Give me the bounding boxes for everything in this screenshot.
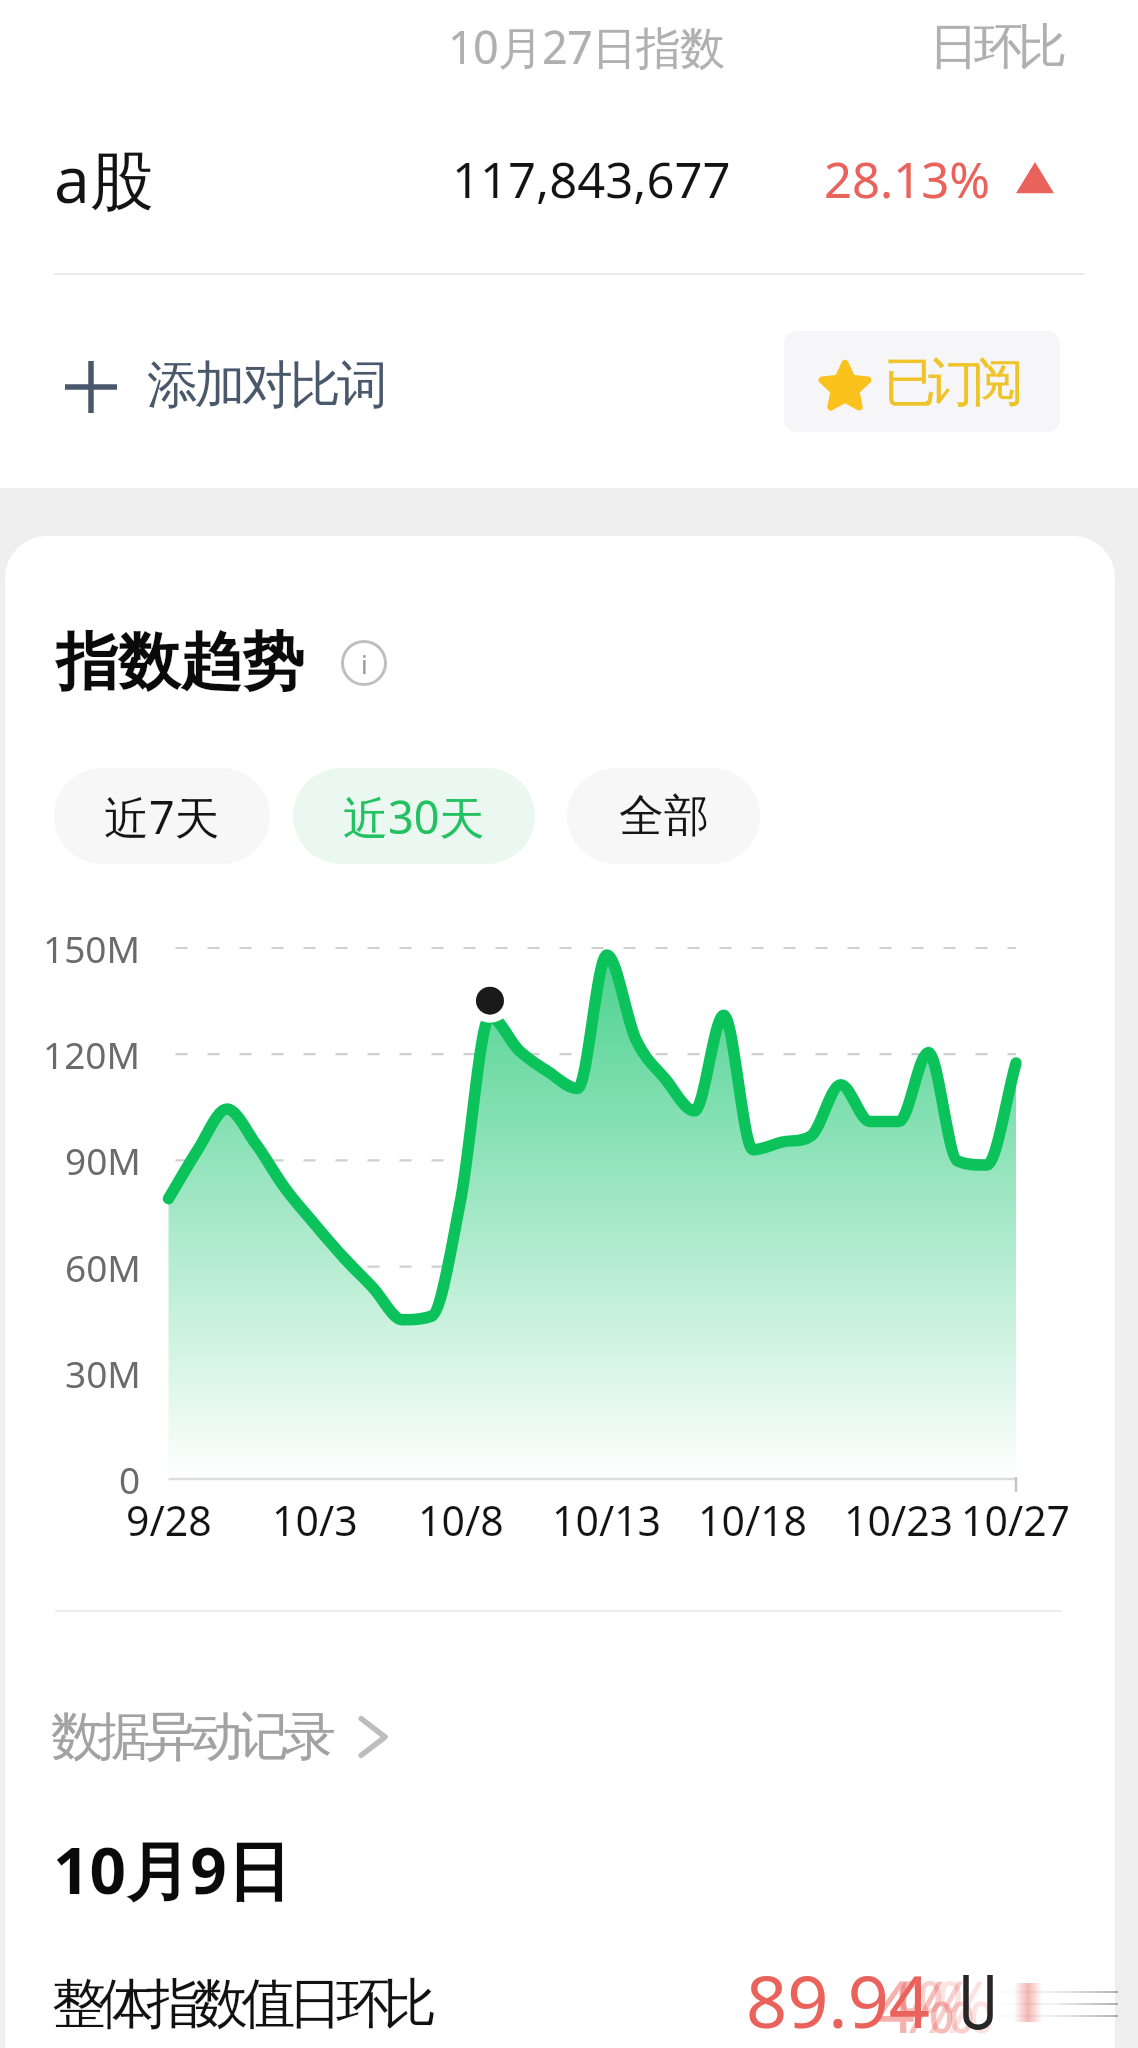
staticText: 90M bbox=[65, 1135, 141, 1185]
staticText: 150M bbox=[43, 923, 141, 973]
button[interactable]: Info bbox=[341, 640, 387, 686]
staticText: 添加对比词 bbox=[147, 353, 385, 417]
staticText: 整体指数值日环比 bbox=[52, 1970, 431, 2038]
staticText: 指数趋势 bbox=[56, 623, 304, 701]
staticText: % bbox=[916, 1956, 976, 2048]
staticText: 28.13% bbox=[824, 146, 990, 213]
staticText: 10/3 bbox=[272, 1492, 358, 1548]
staticText: 近7天 bbox=[104, 786, 220, 847]
staticText: 近30天 bbox=[343, 786, 485, 847]
staticText: 120M bbox=[43, 1029, 141, 1079]
button[interactable]: 数据异动记录 bbox=[54, 1704, 397, 1770]
button[interactable]: 已订阅 bbox=[784, 331, 1060, 432]
button[interactable]: 近7天 bbox=[54, 768, 270, 864]
staticText: 10/8 bbox=[418, 1492, 504, 1548]
staticText: 89.94 bbox=[746, 1951, 931, 2048]
staticText: 10/27 bbox=[961, 1492, 1071, 1548]
staticText: 已订阅 bbox=[888, 350, 1020, 416]
staticText: 117,843,677 bbox=[452, 146, 731, 213]
staticText: 10月27日指数 bbox=[448, 16, 725, 77]
button[interactable]: 近30天 bbox=[293, 768, 535, 864]
staticText: 0 bbox=[119, 1454, 141, 1504]
button[interactable]: 全部 bbox=[567, 768, 760, 864]
staticText: 10/13 bbox=[552, 1492, 662, 1548]
staticText: 10月9日 bbox=[53, 1826, 291, 1913]
button[interactable]: 添加对比词 bbox=[52, 338, 392, 430]
staticText: 10/18 bbox=[698, 1492, 808, 1548]
staticText: 日环比 bbox=[929, 16, 1063, 78]
staticText: 10/23 bbox=[844, 1492, 954, 1548]
staticText: 30M bbox=[65, 1348, 141, 1398]
staticText: 4 bbox=[874, 1956, 916, 2048]
staticText: a股 bbox=[54, 135, 154, 222]
staticText: % bbox=[936, 1956, 996, 2048]
staticText: % bbox=[896, 1956, 956, 2048]
staticText: i bbox=[361, 646, 368, 681]
staticText: 60M bbox=[65, 1242, 141, 1292]
staticText: 9/28 bbox=[126, 1492, 212, 1548]
staticText: 全部 bbox=[619, 788, 709, 845]
staticText: 数据异动记录 bbox=[54, 1704, 333, 1770]
